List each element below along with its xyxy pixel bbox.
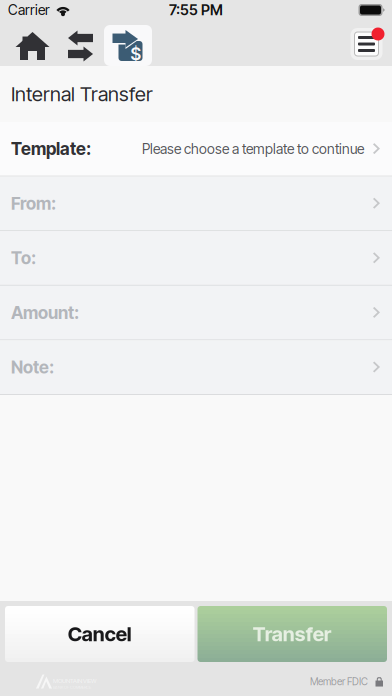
button[interactable]: Cancel [5,606,194,662]
button[interactable]: Template: [0,122,392,177]
staticText: Cancel [68,622,132,646]
button[interactable]: Amount: [0,286,392,340]
button[interactable]: Menu [344,20,389,66]
staticText: 7:55 PM [169,1,223,19]
staticText: Carrier [8,1,50,18]
button[interactable]: Transfer [197,606,387,662]
staticText: Template: [11,138,91,159]
staticText: From: [11,193,56,214]
staticText: Internal Transfer [11,82,153,106]
staticText: MOUNTAIN VIEW [53,677,96,684]
staticText: Amount: [11,302,79,323]
staticText: Member FDIC [310,675,368,688]
staticText: $ [130,43,141,64]
button[interactable]: Transfers [51,20,104,66]
staticText: Please choose a template to continue [142,140,364,157]
staticText: Note: [11,357,54,378]
button[interactable]: From: [0,177,392,231]
button[interactable]: Note: [0,340,392,395]
button[interactable]: To: [0,231,392,286]
staticText: To: [11,247,36,268]
button[interactable]: Home [0,20,51,66]
staticText: Transfer [253,622,332,646]
button[interactable]: Internal Transfer [104,20,152,66]
